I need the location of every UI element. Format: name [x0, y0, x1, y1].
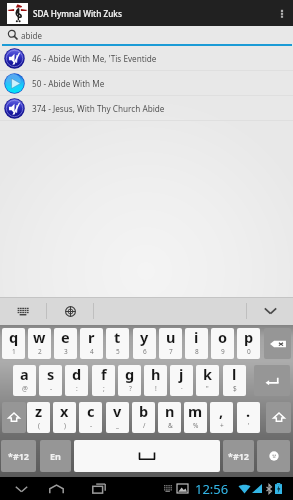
button[interactable]: 50 - Abide With Me: [0, 71, 293, 95]
staticText: r: [88, 328, 95, 347]
button[interactable]: d: [65, 365, 88, 396]
staticText: &: [168, 421, 173, 430]
button[interactable]: i: [185, 328, 208, 359]
staticText: -: [50, 384, 53, 393]
staticText: 0: [247, 347, 251, 356]
staticText: p: [244, 328, 254, 347]
staticText: 7: [169, 347, 173, 356]
button[interactable]: p: [237, 328, 260, 359]
button[interactable]: n: [158, 402, 181, 433]
button[interactable]: w: [28, 328, 51, 359]
staticText: 1: [12, 347, 16, 356]
staticText: En: [50, 450, 61, 462]
staticText: ": [206, 384, 209, 393]
staticText: %: [193, 421, 199, 430]
button[interactable]: Space: [74, 440, 220, 472]
staticText: ·: [181, 384, 183, 393]
staticText: abide: [21, 30, 42, 41]
staticText: d: [72, 365, 82, 384]
button[interactable]: .: [237, 402, 260, 433]
button[interactable]: z: [27, 402, 50, 433]
button[interactable]: f: [92, 365, 115, 396]
staticText: _: [116, 421, 119, 430]
button[interactable]: h: [144, 365, 167, 396]
staticText: h: [151, 365, 161, 384]
staticText: g: [125, 365, 135, 384]
staticText: 5: [116, 347, 120, 356]
button[interactable]: Change language: [47, 297, 93, 325]
button[interactable]: m: [184, 402, 207, 433]
staticText: x: [60, 402, 69, 421]
button[interactable]: k: [196, 365, 219, 396]
staticText: SDA Hymnal With Zuks: [33, 8, 122, 19]
staticText: o: [218, 328, 228, 347]
staticText: m: [188, 402, 203, 421]
staticText: j: [179, 365, 184, 384]
staticText: e: [61, 328, 70, 347]
button[interactable]: Hide keyboard: [247, 297, 293, 325]
staticText: y: [140, 328, 149, 347]
staticText: f: [101, 365, 107, 384]
button[interactable]: *#12: [1, 440, 36, 472]
button[interactable]: j: [170, 365, 193, 396]
staticText: /: [143, 421, 146, 430]
staticText: $: [233, 384, 237, 393]
button[interactable]: Shift: [266, 402, 291, 433]
button[interactable]: v: [106, 402, 129, 433]
staticText: ;: [103, 384, 105, 393]
button[interactable]: o: [211, 328, 234, 359]
staticText: 374 - Jesus, With Thy Church Abide: [32, 103, 165, 114]
staticText: a: [20, 365, 29, 384]
staticText: *#12: [8, 450, 29, 462]
button[interactable]: y: [133, 328, 156, 359]
button[interactable]: s: [39, 365, 62, 396]
staticText: 9: [221, 347, 225, 356]
button[interactable]: q: [2, 328, 25, 359]
staticText: w: [33, 328, 46, 347]
button[interactable]: Home: [42, 477, 71, 500]
button[interactable]: *#12: [223, 440, 254, 472]
button[interactable]: Choose input method: [0, 297, 46, 325]
staticText: *#12: [228, 450, 249, 462]
button[interactable]: t: [106, 328, 129, 359]
button[interactable]: ,: [210, 402, 233, 433]
button[interactable]: g: [118, 365, 141, 396]
button[interactable]: 374 - Jesus, With Thy Church Abide: [0, 96, 293, 120]
staticText: @: [22, 384, 28, 393]
button[interactable]: b: [132, 402, 155, 433]
staticText: v: [113, 402, 122, 421]
button[interactable]: abide: [0, 26, 293, 44]
staticText: b: [139, 402, 149, 421]
staticText: 50 - Abide With Me: [32, 78, 105, 89]
staticText: 2: [38, 347, 42, 356]
staticText: !: [155, 384, 157, 393]
button[interactable]: Enter: [254, 365, 290, 396]
button[interactable]: e: [54, 328, 77, 359]
button[interactable]: Back: [7, 477, 36, 500]
staticText: n: [165, 402, 175, 421]
staticText: s: [47, 365, 55, 384]
staticText: .: [246, 402, 251, 421]
button[interactable]: 46 - Abide With Me, 'Tis Eventide: [0, 46, 293, 70]
staticText: u: [166, 328, 176, 347]
staticText: -: [90, 421, 93, 430]
button[interactable]: l: [223, 365, 246, 396]
button[interactable]: x: [53, 402, 76, 433]
staticText: +: [220, 421, 224, 430]
staticText: 6: [143, 347, 147, 356]
staticText: 12:56: [195, 480, 229, 498]
button[interactable]: u: [159, 328, 182, 359]
button[interactable]: Backspace: [264, 328, 291, 359]
button[interactable]: Shift: [2, 402, 26, 433]
staticText: l: [232, 365, 237, 384]
button[interactable]: More options: [271, 0, 293, 26]
staticText: ?: [129, 384, 132, 393]
staticText: ,: [219, 402, 224, 421]
button[interactable]: r: [80, 328, 103, 359]
button[interactable]: c: [79, 402, 102, 433]
button[interactable]: En: [40, 440, 71, 472]
button[interactable]: Recents: [84, 477, 113, 500]
button[interactable]: Emoji: [257, 440, 290, 472]
staticText: (: [38, 421, 40, 430]
button[interactable]: a: [13, 365, 36, 396]
